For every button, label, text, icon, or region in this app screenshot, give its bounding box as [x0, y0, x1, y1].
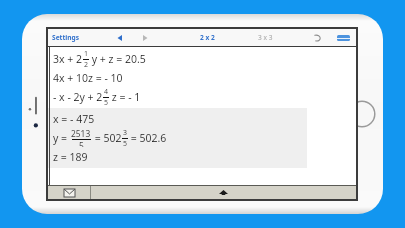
staticText: 2513 [71, 128, 91, 139]
staticText: 4x + 10z = - 10 [53, 71, 123, 85]
staticText: 5 [123, 139, 128, 147]
button[interactable]: Email result [48, 186, 90, 199]
staticText: 5 [79, 140, 84, 147]
button[interactable]: 3 x 3 [258, 33, 273, 42]
staticText: Settings [52, 33, 80, 42]
button[interactable]: Next equation [138, 31, 152, 45]
staticText: 1 [84, 49, 89, 59]
staticText: = 502.6 [128, 131, 167, 145]
staticText: 5 [104, 98, 109, 106]
staticText: 2 x 2 [200, 33, 215, 42]
button[interactable]: Menu [337, 35, 350, 41]
button[interactable]: Home [348, 100, 376, 128]
staticText: 3 x 3 [258, 33, 273, 42]
staticText: - x - 2y + 2 [53, 90, 103, 104]
staticText: y = [53, 131, 70, 145]
staticText: 2 [84, 60, 89, 68]
button[interactable]: 2 x 2 [200, 33, 215, 42]
button[interactable]: Settings [52, 33, 80, 42]
staticText: = 502 [92, 131, 122, 145]
staticText: 3x + 2 [53, 52, 83, 66]
staticText: z = 189 [53, 150, 88, 164]
staticText: 4 [104, 87, 109, 97]
staticText: y + z = 20.5 [89, 52, 146, 66]
staticText: 3 [123, 128, 128, 138]
staticText: z = - 1 [109, 90, 141, 104]
button[interactable]: Undo [311, 31, 325, 45]
button[interactable]: Show keyboard [91, 186, 356, 199]
staticText: x = - 475 [53, 112, 95, 126]
button[interactable]: Previous equation [112, 31, 126, 45]
